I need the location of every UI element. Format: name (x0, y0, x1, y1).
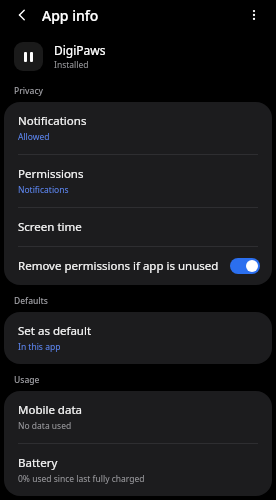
button[interactable]: Battery (4, 444, 272, 496)
button[interactable]: Screen time (4, 208, 272, 246)
staticText: Mobile data (18, 402, 82, 418)
staticText: Notifications (18, 184, 69, 196)
staticText: Privacy (14, 85, 44, 97)
staticText: Remove permissions if app is unused (18, 258, 219, 274)
staticText: Usage (14, 374, 40, 386)
button[interactable]: Permissions (4, 155, 272, 207)
staticText: Battery (18, 455, 58, 471)
staticText: No data used (18, 420, 72, 432)
button[interactable]: Remove permissions toggle (230, 258, 260, 274)
button[interactable]: Set as default (4, 312, 272, 364)
staticText: Permissions (18, 166, 84, 182)
button[interactable]: Back (10, 3, 34, 27)
staticText: DigiPaws (54, 42, 106, 58)
staticText: Defaults (14, 295, 49, 307)
staticText: Installed (54, 59, 89, 71)
staticText: Allowed (18, 131, 50, 143)
staticText: 0% used since last fully charged (18, 473, 145, 485)
staticText: Notifications (18, 113, 87, 129)
button[interactable]: Notifications (4, 102, 272, 154)
staticText: Screen time (18, 219, 82, 235)
button[interactable]: Remove permissions if app is unused (4, 247, 272, 285)
button[interactable]: Mobile data (4, 391, 272, 443)
staticText: In this app (18, 341, 61, 353)
staticText: App info (42, 6, 99, 25)
staticText: Set as default (18, 323, 92, 339)
button[interactable]: More options (242, 3, 266, 27)
